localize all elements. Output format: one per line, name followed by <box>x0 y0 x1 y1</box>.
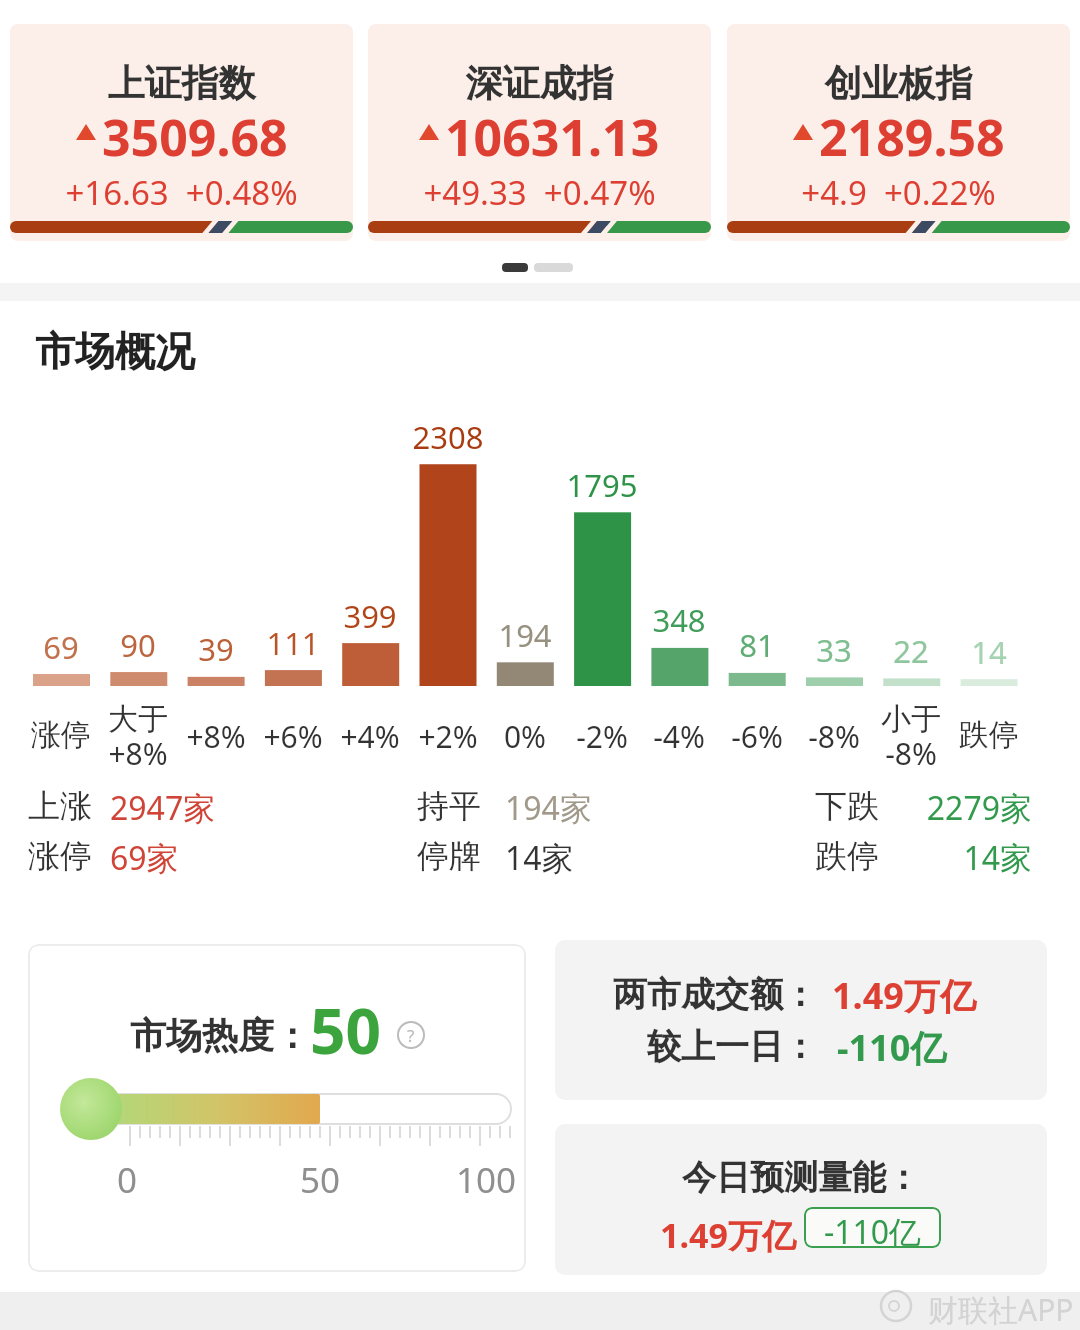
button[interactable]: 创业板指 <box>727 24 1070 241</box>
staticText: 2947家 <box>110 786 216 830</box>
staticText: 2189.58 <box>819 103 1005 161</box>
staticText: 小于 -8% <box>851 700 971 774</box>
staticText: 财联社APP <box>928 1289 1074 1330</box>
staticText: 399 <box>310 595 430 637</box>
staticText: 1.49万亿 <box>660 1212 796 1258</box>
staticText: 0 <box>87 1156 167 1204</box>
button[interactable]: 今日预测量能： <box>555 1124 1047 1275</box>
staticText: +4.9 +0.22% <box>727 170 1070 215</box>
staticText: 0% <box>465 716 585 757</box>
staticText: +2% <box>388 716 508 757</box>
staticText: 创业板指 <box>727 60 1070 107</box>
staticText: 涨停 <box>1 716 121 754</box>
staticText: 1795 <box>542 464 662 506</box>
staticText: 10631.13 <box>445 103 660 161</box>
staticText: 跌停 <box>815 836 879 876</box>
staticText: ? <box>407 1024 415 1047</box>
staticText: -6% <box>697 716 817 757</box>
staticText: -8% <box>774 716 894 757</box>
staticText: 90 <box>78 624 198 666</box>
staticText: 较上一日： <box>555 1025 817 1068</box>
staticText: 194 <box>465 614 585 656</box>
button[interactable]: 深证成指 <box>368 24 711 241</box>
staticText: -110亿 <box>837 1023 947 1072</box>
staticText: 市场热度： <box>130 1013 310 1058</box>
staticText: 下跌 <box>815 786 879 826</box>
staticText: 今日预测量能： <box>555 1156 1047 1199</box>
staticText: 上证指数 <box>10 60 353 107</box>
staticText: 1.49万亿 <box>832 971 976 1020</box>
staticText: 69 <box>1 626 121 668</box>
staticText: 深证成指 <box>368 60 711 107</box>
staticText: 33 <box>774 629 894 671</box>
staticText: 14家 <box>815 836 1032 880</box>
staticText: 22 <box>851 630 971 672</box>
staticText: +8% <box>156 716 276 757</box>
staticText: +4% <box>310 716 430 757</box>
staticText: 194家 <box>505 786 592 830</box>
staticText: 涨停 <box>28 836 92 876</box>
staticText: 跌停 <box>929 716 1049 754</box>
staticText: 111 <box>233 622 353 664</box>
staticText: 3509.68 <box>102 103 288 161</box>
staticText: 69家 <box>110 836 179 880</box>
staticText: -2% <box>542 716 662 757</box>
staticText: -110亿 <box>804 1210 941 1248</box>
staticText: 100 <box>446 1156 526 1204</box>
staticText: +16.63 +0.48% <box>10 170 353 215</box>
staticText: 39 <box>156 628 276 670</box>
staticText: -4% <box>619 716 739 757</box>
button[interactable]: 两市成交额： <box>555 940 1047 1100</box>
staticText: 348 <box>619 599 739 641</box>
staticText: 市场概况 <box>35 326 195 376</box>
staticText: 50 <box>310 988 381 1058</box>
staticText: 持平 <box>417 786 481 826</box>
staticText: 14家 <box>505 836 574 880</box>
button[interactable]: 上证指数 <box>10 24 353 241</box>
staticText: +6% <box>233 716 353 757</box>
staticText: 两市成交额： <box>555 973 817 1016</box>
staticText: +49.33 +0.47% <box>368 170 711 215</box>
staticText: 停牌 <box>417 836 481 876</box>
staticText: 2308 <box>388 416 508 458</box>
staticText: 81 <box>697 624 817 666</box>
staticText: 上涨 <box>28 786 92 826</box>
staticText: 大于 +8% <box>78 700 198 774</box>
staticText: 14 <box>929 631 1049 673</box>
staticText: 50 <box>280 1156 360 1204</box>
staticText: 2279家 <box>815 786 1032 830</box>
button[interactable]: 市场热度： <box>28 944 526 1272</box>
